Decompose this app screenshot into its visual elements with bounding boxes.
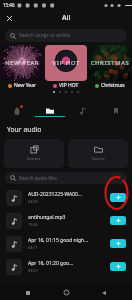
button[interactable]: NEW YEAR	[1, 45, 43, 90]
button[interactable]: Recents	[18, 285, 38, 300]
button[interactable]: Files	[33, 103, 66, 121]
button[interactable]: Device	[68, 139, 128, 168]
button[interactable]: Apr 16, 01:20 goo...	[0, 255, 132, 278]
button[interactable]: Close	[2, 11, 16, 25]
staticText: All	[62, 13, 71, 23]
button[interactable]: Extract	[4, 139, 64, 168]
button[interactable]: Home	[56, 285, 76, 300]
button[interactable]: Back	[94, 285, 114, 300]
staticText: Apr 16, 01:15 good nigh...	[28, 237, 89, 244]
staticText: AUD-20231225-WA00...	[28, 191, 82, 198]
button[interactable]: Search songs or artists	[5, 29, 127, 42]
button[interactable]: Add	[110, 216, 126, 225]
staticText: VIP HOT	[59, 82, 79, 89]
button[interactable]: Saved	[99, 103, 132, 121]
button[interactable]: AUD-20231225-WA00...	[0, 186, 132, 209]
staticText: New Year	[14, 82, 37, 89]
staticText: Your audio	[7, 125, 42, 134]
staticText: 04:09	[28, 199, 38, 204]
button[interactable]: Apr 16, 01:15 good nigh...	[0, 232, 132, 255]
staticText: VIP HOT	[45, 59, 87, 67]
staticText: Search audio files	[19, 175, 57, 181]
staticText: Device	[92, 156, 105, 162]
staticText: antihungal.mp3	[28, 214, 66, 221]
staticText: Search songs or artists	[19, 32, 71, 39]
button[interactable]: CHRISTMAS	[89, 45, 131, 90]
staticText: 04:11	[28, 245, 38, 250]
staticText: 15:44	[28, 222, 38, 227]
staticText: Extract	[27, 156, 41, 162]
button[interactable]: Add	[110, 193, 126, 202]
button[interactable]: Add	[110, 262, 126, 271]
button[interactable]: Music	[66, 103, 99, 121]
button[interactable]: antihungal.mp3	[0, 209, 132, 232]
staticText: Apr 16, 01:20 goo...	[28, 260, 74, 267]
staticText: 03:57	[28, 268, 38, 273]
staticText: CHRISTMAS	[89, 59, 131, 67]
button[interactable]: VIP HOT	[45, 45, 87, 90]
button[interactable]: Trending	[0, 103, 33, 121]
staticText: Christmas	[101, 82, 125, 89]
staticText: NEW YEAR	[1, 59, 43, 67]
staticText: 15:46	[3, 2, 15, 8]
button[interactable]: Search audio files	[5, 172, 127, 184]
button[interactable]: Add	[110, 239, 126, 248]
